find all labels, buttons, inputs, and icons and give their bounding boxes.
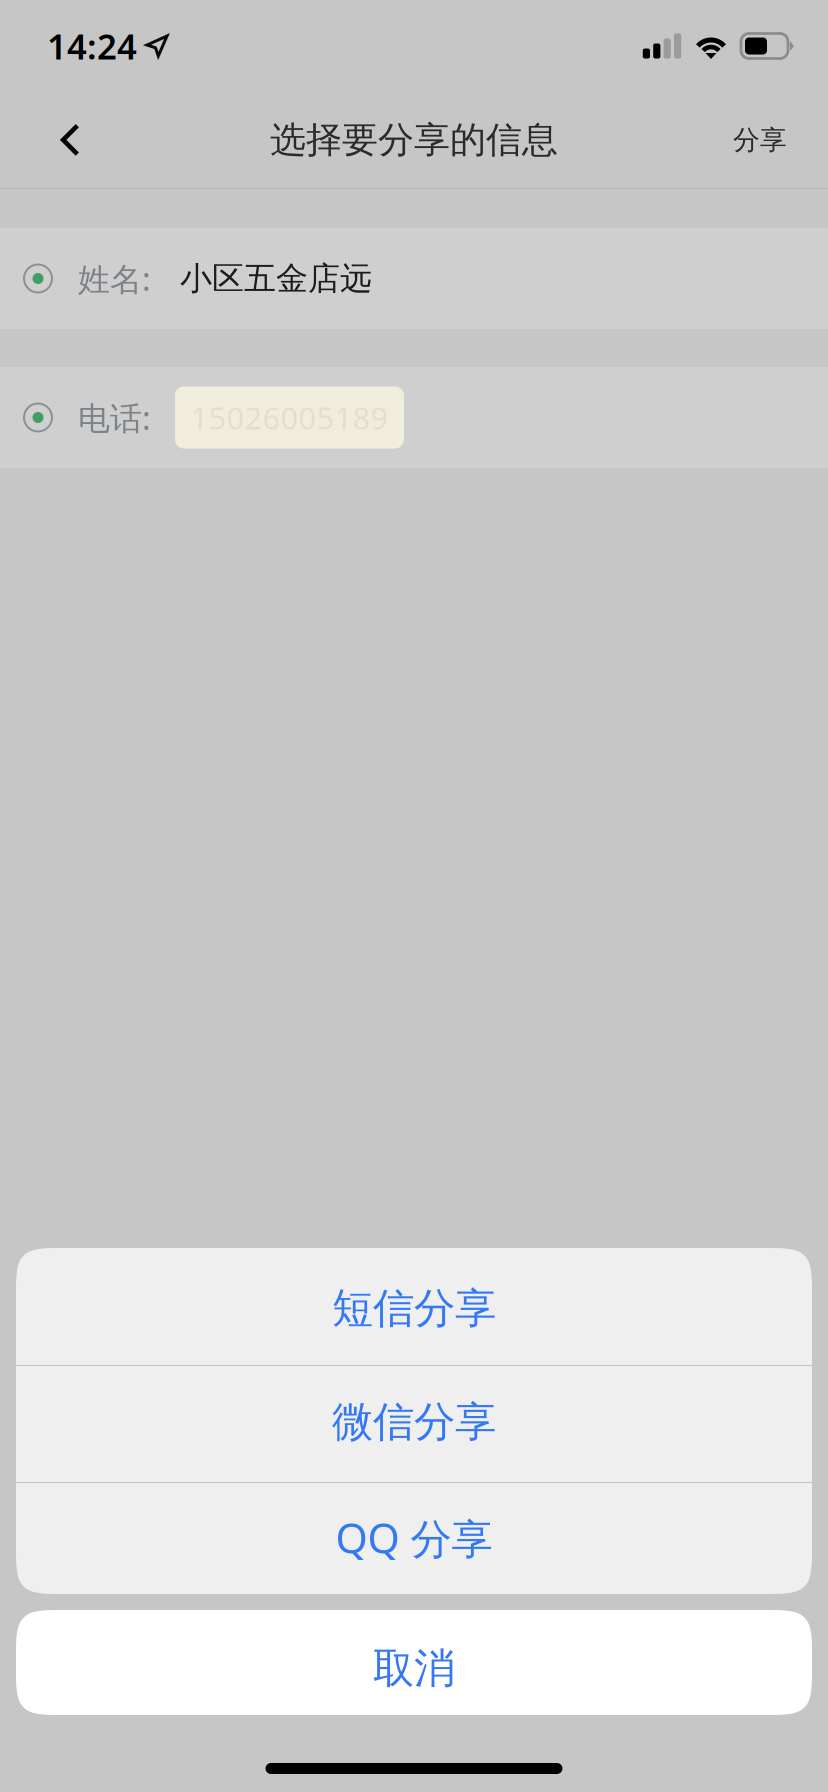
staticText: 姓名: (78, 257, 151, 300)
button[interactable]: 取消 (16, 1610, 812, 1715)
staticText: 小区五金店远 (180, 259, 372, 298)
button[interactable]: 短信分享 (16, 1248, 812, 1365)
staticText: 分享 (733, 124, 787, 156)
staticText: 选择要分享的信息 (270, 118, 558, 162)
button[interactable]: QQ 分享 (16, 1483, 812, 1594)
staticText: 电话: (78, 396, 151, 439)
button[interactable]: 微信分享 (16, 1366, 812, 1482)
staticText: QQ 分享 (335, 1510, 492, 1565)
staticText: 取消 (373, 1643, 455, 1694)
button[interactable]: 分享 (692, 96, 828, 184)
staticText: 14:24 (47, 23, 137, 69)
staticText: 微信分享 (332, 1397, 496, 1447)
button[interactable]: 姓名: (0, 228, 828, 329)
button[interactable]: 电话: (0, 367, 828, 468)
staticText: 短信分享 (332, 1283, 496, 1334)
button[interactable]: 返回 (0, 96, 140, 184)
staticText: 15026005189 (190, 397, 388, 438)
